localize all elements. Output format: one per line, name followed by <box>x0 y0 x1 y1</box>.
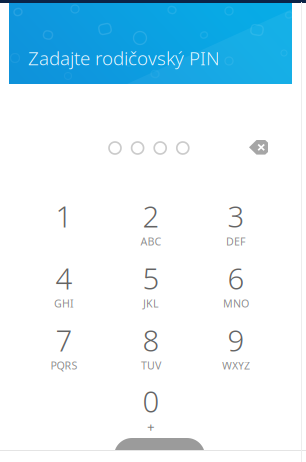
button[interactable]: 0 <box>108 378 194 436</box>
staticText: 7 <box>55 320 72 359</box>
staticText: Zadajte rodičovský PIN <box>28 46 220 70</box>
staticText: 6 <box>227 258 244 297</box>
staticText: 1 <box>55 196 72 235</box>
button[interactable]: 1 <box>21 193 107 251</box>
button[interactable]: 2 <box>108 193 194 251</box>
staticText: 0 <box>142 381 159 420</box>
staticText: PQRS <box>50 358 77 373</box>
button[interactable]: 9 <box>193 317 279 375</box>
staticText: JKL <box>143 296 159 311</box>
button[interactable]: 6 <box>193 255 279 313</box>
staticText: + <box>147 418 155 435</box>
staticText: WXYZ <box>222 358 250 373</box>
button[interactable]: 4 <box>21 255 107 313</box>
button[interactable]: 5 <box>108 255 194 313</box>
button[interactable]: 3 <box>193 193 279 251</box>
button[interactable]: 8 <box>108 317 194 375</box>
staticText: 4 <box>55 258 72 297</box>
button[interactable]: Delete <box>236 129 280 165</box>
staticText: GHI <box>54 296 74 311</box>
staticText: 2 <box>142 196 159 235</box>
staticText: TUV <box>141 358 161 373</box>
staticText: 3 <box>227 196 244 235</box>
staticText: 8 <box>142 320 159 359</box>
staticText: 5 <box>142 258 159 297</box>
staticText: 9 <box>227 320 244 359</box>
staticText: MNO <box>223 296 249 311</box>
button[interactable]: 7 <box>21 317 107 375</box>
staticText: DEF <box>226 234 246 249</box>
staticText: ABC <box>140 234 161 249</box>
